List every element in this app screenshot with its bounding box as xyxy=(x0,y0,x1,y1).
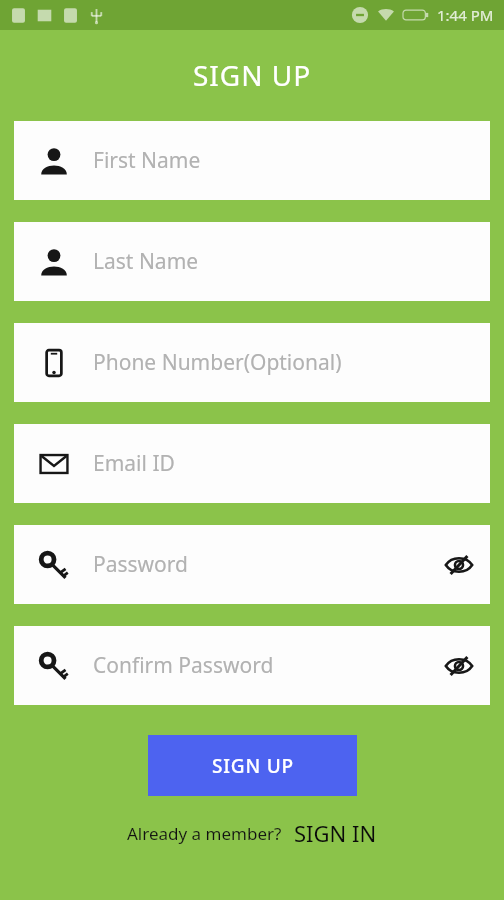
button[interactable]: Already a member? xyxy=(127,822,282,845)
staticText: Phone Number(Optional) xyxy=(93,348,342,377)
button[interactable]: Toggle password visibility xyxy=(428,626,490,705)
button[interactable]: Email ID xyxy=(14,424,490,503)
button[interactable]: SIGN IN xyxy=(294,818,377,848)
button[interactable]: Toggle password visibility xyxy=(428,525,490,604)
button[interactable]: SIGN UP xyxy=(148,735,357,796)
button[interactable]: Phone Number(Optional) xyxy=(14,323,490,402)
staticText: Email ID xyxy=(93,449,175,478)
button[interactable]: Confirm Password xyxy=(14,626,490,705)
staticText: SIGN UP xyxy=(0,56,504,94)
staticText: First Name xyxy=(93,146,201,175)
staticText: 1:44 PM xyxy=(437,5,494,25)
staticText: SIGN UP xyxy=(212,753,294,779)
staticText: Last Name xyxy=(93,247,199,276)
button[interactable]: Password xyxy=(14,525,490,604)
button[interactable]: First Name xyxy=(14,121,490,200)
staticText: Password xyxy=(93,550,188,579)
staticText: Confirm Password xyxy=(93,651,274,680)
button[interactable]: Last Name xyxy=(14,222,490,301)
